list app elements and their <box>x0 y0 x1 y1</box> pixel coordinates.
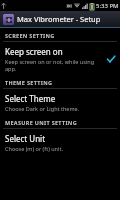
staticText: Select Theme <box>5 93 56 104</box>
button[interactable]: Keep screen on <box>0 42 120 76</box>
button[interactable]: Keep screen on toggle <box>106 54 116 64</box>
button[interactable]: Select Theme <box>0 89 120 116</box>
button[interactable]: Select Unit <box>0 129 120 156</box>
staticText: 5:33 PM <box>96 2 119 10</box>
button[interactable]: Max Vibrometer - Setup <box>0 11 120 27</box>
staticText: Max Vibrometer - Setup <box>17 14 101 24</box>
staticText: Keep screen on or not, while using app. <box>5 58 106 72</box>
staticText: SCREEN SETTING <box>5 32 55 39</box>
staticText: Select Unit <box>5 133 46 144</box>
staticText: MEASURE UNIT SETTING <box>5 119 77 126</box>
staticText: Choose Dark or Light theme. <box>5 105 80 112</box>
staticText: THEME SETTING <box>5 79 53 86</box>
staticText: Choose (m) or (ft) unit. <box>5 145 63 152</box>
staticText: Keep screen on <box>5 46 63 57</box>
